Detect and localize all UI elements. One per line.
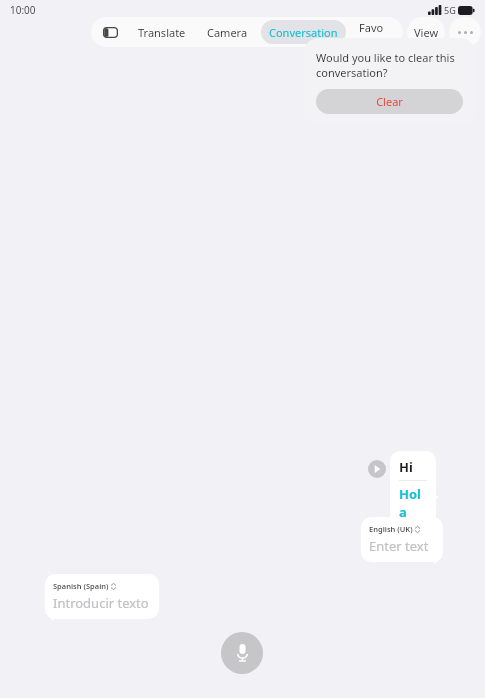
staticText: Translate (138, 25, 186, 40)
button[interactable]: Conversation (261, 20, 346, 44)
button[interactable]: Hi (390, 451, 436, 528)
staticText: Introducir texto (53, 594, 149, 612)
staticText: Camera (207, 25, 248, 40)
staticText: Hola (399, 485, 427, 521)
staticText: Favourites (359, 20, 389, 44)
button[interactable]: Record voice (221, 632, 263, 674)
staticText: Hi (399, 458, 413, 476)
button[interactable]: Favourites (351, 20, 397, 44)
staticText: 10:00 (10, 3, 36, 17)
staticText: Spanish (Spain) (53, 581, 109, 591)
button[interactable]: More options (449, 17, 481, 47)
button[interactable]: Play translation (368, 460, 386, 478)
staticText: Enter text (369, 537, 429, 555)
button[interactable]: Spanish (Spain) (45, 574, 159, 619)
staticText: View (414, 25, 439, 40)
staticText: Clear (376, 94, 403, 109)
button[interactable]: Clear (316, 89, 463, 114)
button[interactable]: Camera (199, 20, 256, 44)
staticText: Would you like to clear this conversatio… (316, 50, 463, 80)
staticText: English (UK) (369, 524, 413, 534)
button[interactable]: English (UK) (361, 517, 443, 562)
button[interactable]: Toggle sidebar (97, 19, 123, 45)
button[interactable]: View (407, 17, 445, 47)
staticText: 5G (444, 4, 456, 16)
button[interactable]: Translate (130, 20, 194, 44)
staticText: Conversation (269, 25, 338, 40)
